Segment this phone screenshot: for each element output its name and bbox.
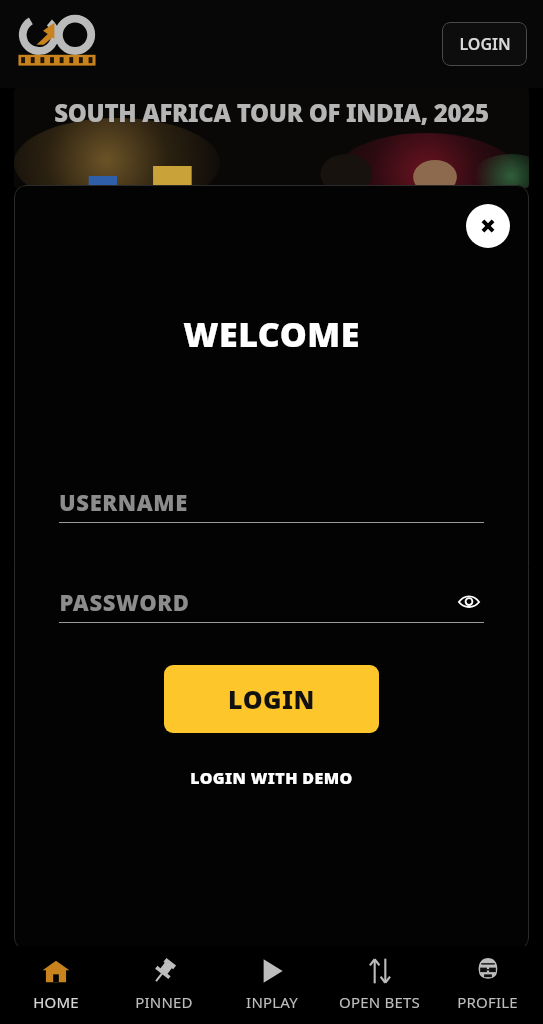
button[interactable]: Show password	[454, 587, 484, 617]
staticText: LOGIN	[228, 682, 315, 716]
staticText: USERNAME	[59, 487, 188, 517]
button[interactable]: Close	[466, 204, 510, 248]
staticText: WELCOME	[183, 311, 360, 357]
button[interactable]: PROFILE	[435, 946, 540, 1024]
button[interactable]: INPLAY	[219, 946, 324, 1024]
staticText: HOME	[33, 992, 79, 1012]
button[interactable]: PASSWORD	[59, 585, 484, 619]
staticText: LOGIN	[459, 33, 511, 55]
staticText: SOUTH AFRICA TOUR OF INDIA, 2025	[54, 96, 489, 129]
button[interactable]: OPEN BETS	[327, 946, 432, 1024]
button[interactable]: HOME	[3, 946, 108, 1024]
staticText: PROFILE	[457, 992, 518, 1012]
button[interactable]: LOGIN	[442, 22, 527, 66]
button[interactable]: Go Exchange logo	[16, 17, 98, 71]
button[interactable]: USERNAME	[59, 485, 484, 519]
button[interactable]: LOGIN	[164, 665, 379, 733]
button[interactable]: SOUTH AFRICA TOUR OF INDIA, 2025	[14, 88, 529, 188]
staticText: PINNED	[135, 992, 193, 1012]
button[interactable]: LOGIN WITH DEMO	[180, 761, 363, 795]
staticText: OPEN BETS	[339, 992, 420, 1012]
button[interactable]: PINNED	[111, 946, 216, 1024]
staticText: LOGIN WITH DEMO	[190, 767, 353, 789]
staticText: PASSWORD	[59, 587, 190, 617]
staticText: INPLAY	[246, 992, 298, 1012]
